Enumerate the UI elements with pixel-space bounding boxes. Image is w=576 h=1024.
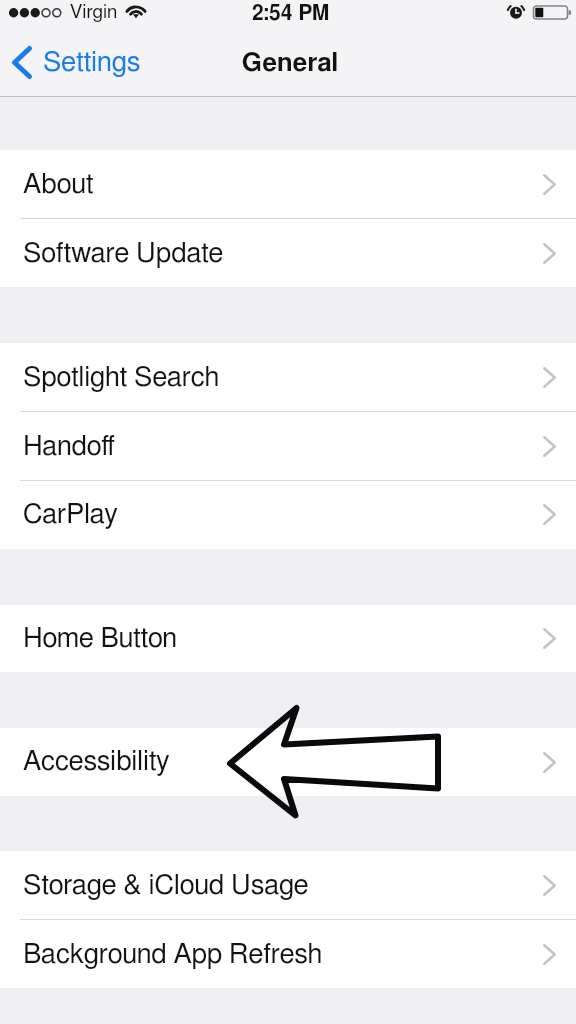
staticText: Background App Refresh bbox=[23, 941, 323, 969]
staticText: Spotlight Search bbox=[23, 364, 220, 392]
staticText: About bbox=[23, 171, 94, 199]
button[interactable]: About bbox=[0, 150, 576, 219]
button[interactable]: Software Update bbox=[0, 219, 576, 288]
staticText: General bbox=[2, 50, 576, 76]
staticText: Handoff bbox=[23, 433, 115, 461]
staticText: CarPlay bbox=[23, 501, 118, 529]
button[interactable]: Back to Settings bbox=[0, 41, 155, 86]
staticText: Storage & iCloud Usage bbox=[23, 872, 309, 900]
button[interactable]: Handoff bbox=[0, 412, 576, 481]
staticText: Virgin bbox=[70, 3, 118, 22]
staticText: Software Update bbox=[23, 240, 224, 268]
button[interactable]: Storage & iCloud Usage bbox=[0, 851, 576, 920]
staticText: Settings bbox=[43, 49, 141, 77]
button[interactable]: Background App Refresh bbox=[0, 920, 576, 989]
button[interactable]: CarPlay bbox=[0, 480, 576, 549]
button[interactable]: Accessibility bbox=[0, 728, 576, 796]
staticText: 2:54 PM bbox=[3, 3, 576, 24]
button[interactable]: Home Button bbox=[0, 605, 576, 672]
staticText: Home Button bbox=[23, 625, 178, 653]
staticText: Accessibility bbox=[23, 748, 170, 776]
button[interactable]: Spotlight Search bbox=[0, 343, 576, 412]
